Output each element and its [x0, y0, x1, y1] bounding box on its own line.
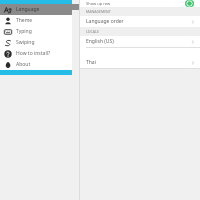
button[interactable]: Typing [0, 26, 72, 37]
staticText: Show up row [86, 1, 111, 6]
button[interactable]: Thai [80, 57, 200, 68]
staticText: Language [16, 6, 40, 13]
staticText: Language order [86, 18, 191, 25]
staticText: Thai [86, 59, 191, 66]
staticText: English (US) [86, 38, 191, 45]
button[interactable]: Language [0, 4, 72, 15]
button[interactable]: Toggle [185, 0, 194, 7]
staticText: Theme [16, 17, 33, 24]
staticText: How to install? [16, 50, 51, 57]
button[interactable]: Show up row [80, 0, 200, 7]
staticText: About [16, 61, 31, 68]
button[interactable]: About [0, 59, 72, 70]
button[interactable]: Swiping [0, 37, 72, 48]
staticText: Swiping [16, 39, 35, 46]
staticText: LOCALE [86, 29, 99, 34]
button[interactable]: English (US) [80, 36, 200, 47]
button[interactable]: How to install? [0, 48, 72, 59]
button[interactable]: Theme [0, 15, 72, 26]
button[interactable]: Language order [80, 16, 200, 27]
staticText: MANAGEMENT [86, 9, 111, 14]
staticText: Typing [16, 28, 32, 35]
